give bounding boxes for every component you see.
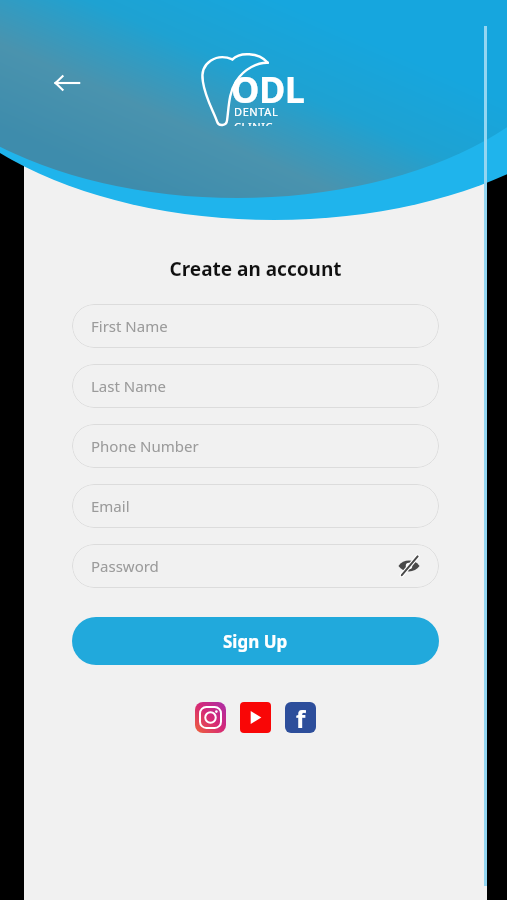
staticText: Password [91,556,159,576]
staticText: First Name [91,316,168,336]
staticText: Sign Up [223,630,288,653]
button[interactable]: Facebook [285,702,316,733]
staticText: DENTAL CLINIC [234,104,315,126]
staticText: Last Name [91,376,167,396]
button[interactable]: YouTube [240,702,271,733]
staticText: Create an account [169,256,342,282]
button[interactable]: Password [72,544,439,588]
button[interactable]: Sign Up [72,617,439,665]
button[interactable]: First Name [72,304,439,348]
staticText: Phone Number [91,436,199,456]
button[interactable]: Back [46,62,88,104]
button[interactable]: Last Name [72,364,439,408]
button[interactable]: Email [72,484,439,528]
button[interactable]: Instagram [195,702,226,733]
staticText: ODL [231,65,305,114]
button[interactable]: Phone Number [72,424,439,468]
staticText: Email [91,496,130,516]
staticText: f [296,702,306,733]
button[interactable]: Show password [395,552,423,580]
